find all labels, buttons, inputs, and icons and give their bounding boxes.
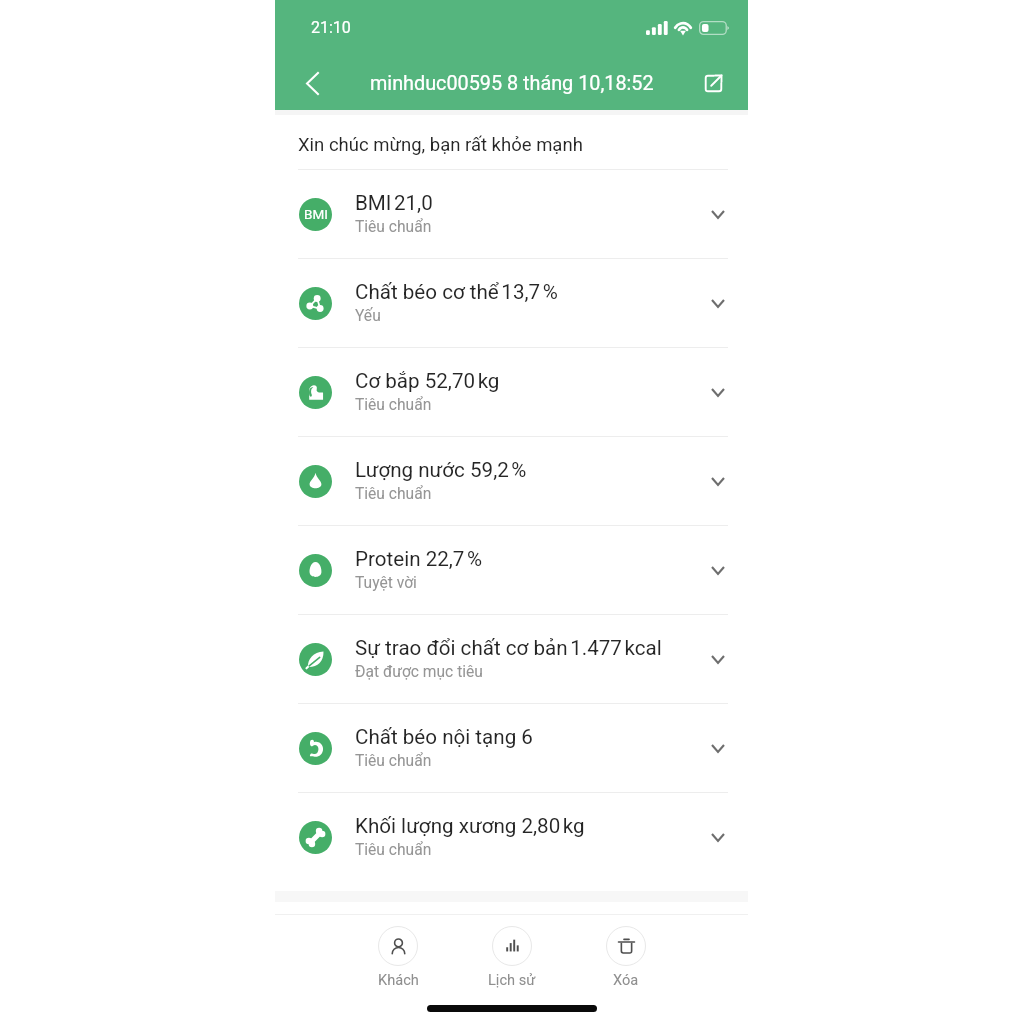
staticText: Tiêu chuẩn	[355, 841, 432, 859]
staticText: Cơ bắp 52,70 kg	[355, 369, 500, 393]
staticText: minhduc00595 8 tháng 10,18:52	[370, 72, 654, 95]
button[interactable]: Chất béo nội tạng 6	[275, 704, 748, 792]
button[interactable]: BMI	[275, 170, 748, 258]
staticText: Khách	[378, 971, 419, 988]
staticText: Tiêu chuẩn	[355, 485, 432, 503]
button[interactable]: Sự trao đổi chất cơ bản 1.477 kcal	[275, 615, 748, 703]
staticText: Chất béo nội tạng 6	[355, 725, 533, 749]
staticText: BMI	[304, 206, 328, 222]
button[interactable]: Khối lượng xương 2,80 kg	[275, 793, 748, 881]
staticText: Tiêu chuẩn	[355, 396, 432, 414]
staticText: Tuyệt vời	[355, 574, 417, 592]
button[interactable]: Share	[699, 69, 727, 97]
button[interactable]: Xóa	[569, 926, 683, 988]
staticText: BMI 21,0	[355, 191, 433, 215]
staticText: Đạt được mục tiêu	[355, 663, 483, 681]
button[interactable]: Chất béo cơ thể 13,7 %	[275, 259, 748, 347]
staticText: Tiêu chuẩn	[355, 752, 432, 770]
staticText: Lượng nước 59,2 %	[355, 458, 527, 482]
button[interactable]: Cơ bắp 52,70 kg	[275, 348, 748, 436]
staticText: Sự trao đổi chất cơ bản 1.477 kcal	[355, 636, 662, 660]
staticText: Xin chúc mừng, bạn rất khỏe mạnh	[298, 134, 583, 156]
staticText: Tiêu chuẩn	[355, 218, 432, 236]
staticText: Chất béo cơ thể 13,7 %	[355, 280, 558, 304]
staticText: Lịch sử	[488, 971, 536, 988]
staticText: Yếu	[355, 307, 381, 325]
button[interactable]: Protein 22,7 %	[275, 526, 748, 614]
staticText: Protein 22,7 %	[355, 547, 483, 571]
button[interactable]: Back	[297, 68, 327, 98]
staticText: Khối lượng xương 2,80 kg	[355, 814, 585, 838]
button[interactable]: Lịch sử	[455, 926, 569, 988]
button[interactable]: Lượng nước 59,2 %	[275, 437, 748, 525]
staticText: Xóa	[613, 971, 639, 988]
staticText: 21:10	[311, 18, 351, 37]
button[interactable]: Khách	[341, 926, 455, 988]
